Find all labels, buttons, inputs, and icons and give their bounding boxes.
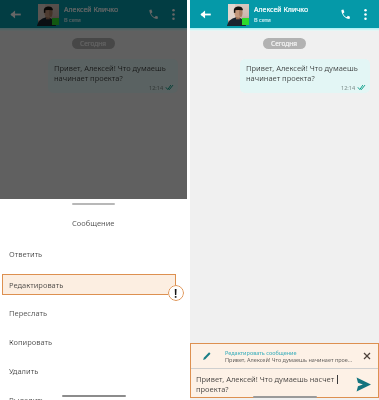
staticText: В сети	[254, 16, 271, 23]
button[interactable]: Call	[336, 5, 354, 23]
button[interactable]: Выделить	[0, 385, 187, 400]
button[interactable]: Удалить	[0, 356, 187, 386]
button[interactable]: Cancel editing	[359, 348, 374, 363]
staticText: В сети	[64, 16, 81, 23]
button[interactable]: Back	[6, 5, 24, 23]
staticText: Привет, Алексей! Что думаешь начинает пр…	[246, 63, 365, 83]
staticText: Привет, Алексей! Что думаешь насчет прое…	[196, 374, 349, 394]
button[interactable]: Переслать	[0, 298, 187, 328]
button[interactable]: Call	[144, 5, 162, 23]
staticText: Редактировать	[9, 280, 64, 290]
staticText: Переслать	[9, 308, 48, 318]
staticText: Алексей Кличко	[64, 5, 119, 15]
staticText: Удалить	[9, 366, 39, 376]
staticText: Выделить	[9, 395, 45, 400]
staticText: Ответить	[9, 249, 43, 259]
staticText: !	[174, 285, 178, 301]
staticText: Сегодня	[80, 39, 107, 48]
staticText: Сегодня	[271, 39, 298, 48]
staticText: 12:14	[341, 84, 356, 90]
button[interactable]: More options	[164, 5, 182, 23]
button[interactable]: Редактировать	[2, 274, 176, 295]
staticText: Копировать	[9, 337, 53, 347]
button[interactable]: Копировать	[0, 327, 187, 357]
button[interactable]: More options	[356, 5, 374, 23]
staticText: Привет, Алексей! Что думаешь начинает пр…	[225, 356, 353, 363]
button[interactable]: Send	[352, 373, 374, 395]
staticText: 12:14	[149, 84, 164, 90]
staticText: Привет, Алексей! Что думаешь начинает пр…	[54, 63, 173, 83]
button[interactable]: Ответить	[0, 239, 187, 269]
staticText: Алексей Кличко	[254, 5, 309, 15]
staticText: Сообщение	[72, 218, 115, 228]
button[interactable]: Back	[196, 5, 214, 23]
staticText: Редактировать сообщение	[225, 349, 297, 356]
